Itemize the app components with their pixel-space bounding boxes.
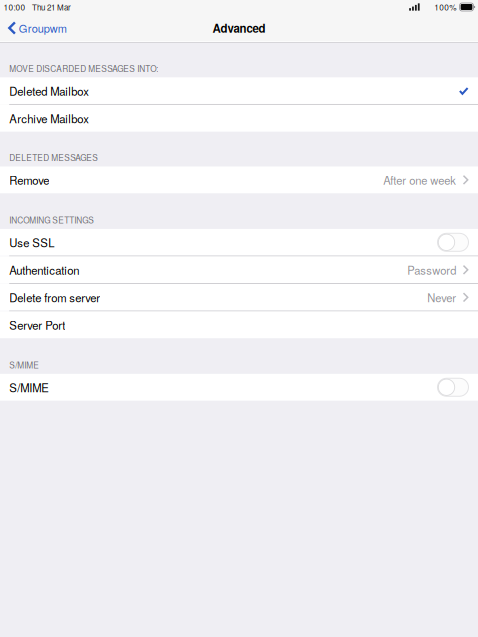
staticText: Use SSL xyxy=(9,234,54,250)
button[interactable]: Server Port xyxy=(0,311,478,338)
staticText: S/MIME xyxy=(9,359,39,371)
staticText: Thu 21 Mar xyxy=(32,1,71,13)
staticText: INCOMING SETTINGS xyxy=(9,214,94,226)
staticText: Archive Mailbox xyxy=(9,110,89,126)
staticText: 10:00 xyxy=(3,1,25,13)
button[interactable]: S/MIME xyxy=(0,374,478,401)
button[interactable]: Archive Mailbox xyxy=(0,105,478,132)
button[interactable]: Authentication xyxy=(0,256,478,283)
staticText: Authentication xyxy=(9,262,79,278)
staticText: Password xyxy=(407,262,456,278)
button[interactable]: Use SSL xyxy=(0,229,478,256)
staticText: After one week xyxy=(383,172,456,188)
staticText: 100% xyxy=(434,1,456,13)
button[interactable]: Remove xyxy=(0,166,478,193)
button[interactable]: Groupwm xyxy=(0,14,73,41)
staticText: Remove xyxy=(9,172,49,188)
button[interactable]: Delete from server xyxy=(0,284,478,311)
staticText: Advanced xyxy=(212,20,265,36)
staticText: Deleted Mailbox xyxy=(9,83,89,99)
staticText: Never xyxy=(427,289,456,305)
staticText: S/MIME xyxy=(9,379,49,395)
staticText: Server Port xyxy=(9,317,65,333)
button[interactable]: Deleted Mailbox xyxy=(0,77,478,104)
staticText: MOVE DISCARDED MESSAGES INTO: xyxy=(9,62,158,74)
staticText: Groupwm xyxy=(19,20,67,36)
staticText: DELETED MESSAGES xyxy=(9,151,98,163)
staticText: Delete from server xyxy=(9,289,100,305)
